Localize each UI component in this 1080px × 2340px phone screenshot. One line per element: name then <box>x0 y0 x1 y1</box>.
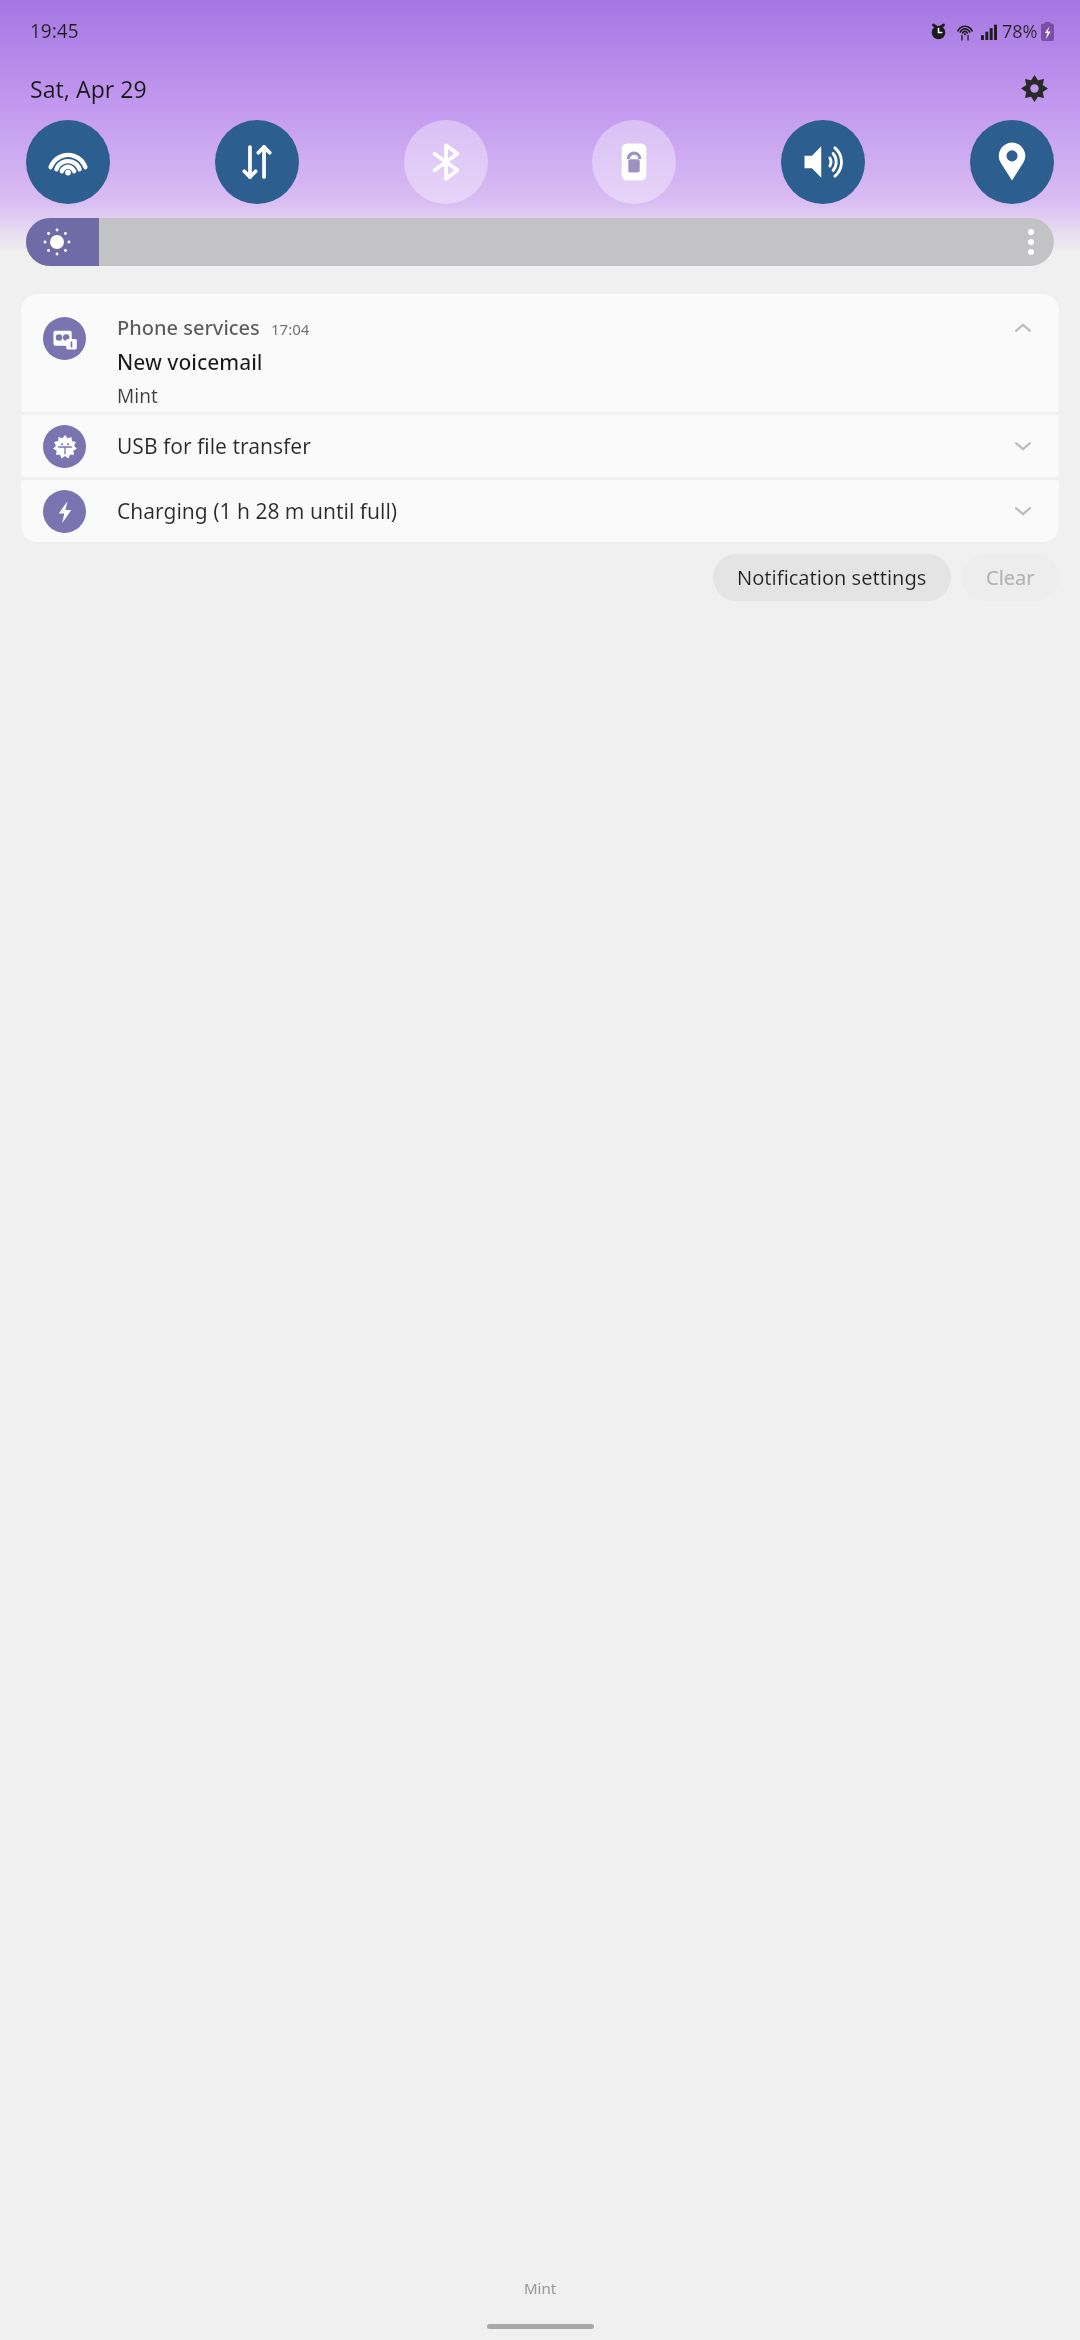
staticText: 78% <box>1002 19 1038 44</box>
button[interactable]: Phone services <box>21 294 1059 412</box>
button[interactable]: Collapse <box>1001 306 1045 350</box>
button[interactable]: Charging (1 h 28 m until full) <box>21 480 1059 542</box>
button[interactable]: USB for file transfer <box>21 415 1059 477</box>
button[interactable]: Bluetooth <box>404 120 488 204</box>
staticText: Clear <box>986 564 1035 591</box>
button[interactable]: Wi-Fi <box>26 120 110 204</box>
staticText: New voicemail <box>117 348 263 377</box>
staticText: 17:04 <box>271 319 310 339</box>
staticText: Mint <box>117 383 158 409</box>
staticText: Mint <box>524 2278 557 2298</box>
button[interactable]: Expand <box>1001 424 1045 468</box>
button[interactable]: Settings <box>1012 66 1056 110</box>
button[interactable]: Brightness <box>26 218 1054 266</box>
button[interactable]: Sound <box>781 120 865 204</box>
staticText: 19:45 <box>30 18 79 44</box>
button[interactable]: Expand <box>1001 489 1045 533</box>
staticText: Notification settings <box>737 564 927 591</box>
button[interactable]: Auto rotate lock <box>592 120 676 204</box>
staticText: Phone services <box>117 314 260 341</box>
staticText: Sat, Apr 29 <box>30 73 147 104</box>
staticText: USB for file transfer <box>117 432 1001 461</box>
button[interactable]: Clear <box>962 554 1059 601</box>
button[interactable]: Mobile data <box>215 120 299 204</box>
button[interactable]: Notification settings <box>713 554 951 601</box>
button[interactable]: Location <box>970 120 1054 204</box>
staticText: Charging (1 h 28 m until full) <box>117 497 1001 526</box>
